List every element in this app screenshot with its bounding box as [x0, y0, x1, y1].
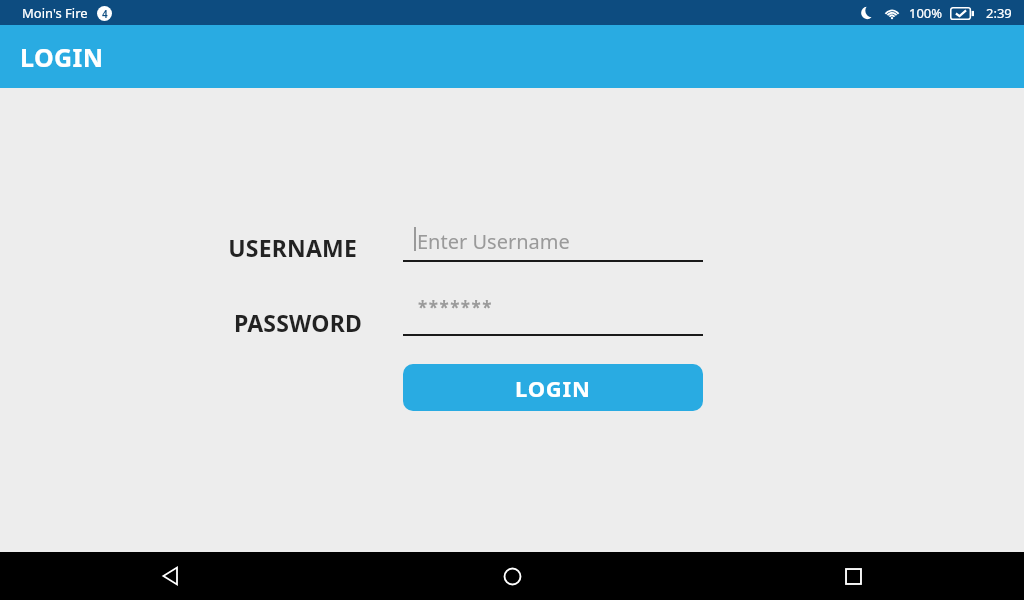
staticText: Moin's Fire: [22, 4, 88, 22]
staticText: Enter Username: [417, 228, 570, 255]
button[interactable]: Home: [342, 552, 683, 600]
staticText: *******: [418, 296, 493, 319]
staticText: USERNAME: [157, 232, 357, 263]
button[interactable]: Recent apps: [683, 552, 1024, 600]
staticText: 4: [102, 7, 108, 21]
button[interactable]: LOGIN: [403, 364, 703, 411]
staticText: 100%: [909, 4, 943, 22]
button[interactable]: Back: [0, 552, 342, 600]
staticText: LOGIN: [20, 40, 104, 74]
button[interactable]: Enter Username: [403, 218, 703, 262]
staticText: 2:39: [986, 4, 1012, 22]
staticText: LOGIN: [515, 373, 591, 403]
button[interactable]: *******: [403, 294, 703, 336]
staticText: PASSWORD: [162, 307, 362, 338]
